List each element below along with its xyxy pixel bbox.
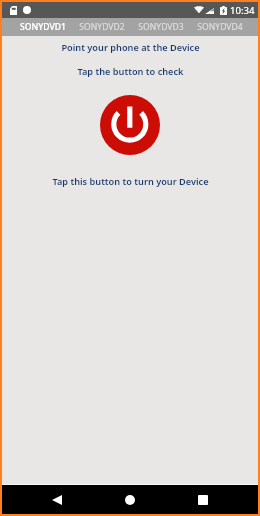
staticText: SONYDVD3 (138, 21, 184, 33)
button[interactable]: SONYDVD4 (190, 18, 249, 36)
button[interactable]: Back (45, 488, 69, 512)
button[interactable]: Recent apps (191, 488, 215, 512)
staticText: Tap the button to check (77, 65, 184, 78)
staticText: SONYDVD1 (20, 21, 66, 33)
staticText: SONYDVD2 (79, 21, 125, 33)
button[interactable]: Home (118, 488, 142, 512)
button[interactable]: SONYDVD1 (13, 18, 72, 36)
button[interactable]: Power (100, 95, 160, 155)
button[interactable]: SONYDVD3 (131, 18, 190, 36)
staticText: Point your phone at the Device (61, 41, 200, 54)
staticText: Tap this button to turn your Device (52, 175, 209, 188)
staticText: SONYDVD4 (197, 21, 243, 33)
button[interactable]: SONYDVD2 (72, 18, 131, 36)
staticText: 10:34 (230, 4, 255, 17)
